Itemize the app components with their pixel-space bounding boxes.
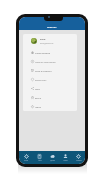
button[interactable]: Terms & Conditions (23, 66, 77, 75)
staticText: Profile (63, 160, 68, 162)
button[interactable]: Quotes (46, 151, 59, 164)
button[interactable]: Home (19, 151, 33, 164)
staticText: Kunal (40, 38, 46, 41)
button[interactable]: Privacy Policy (23, 75, 77, 84)
button[interactable]: About SET TOOLS BUILD (23, 57, 77, 66)
staticText: Terms & Conditions (35, 70, 52, 72)
staticText: Rate us (35, 97, 42, 99)
button[interactable]: Logout (23, 102, 77, 111)
staticText: Settings (47, 25, 57, 28)
staticText: About SET TOOLS BUILD (35, 61, 56, 63)
button[interactable]: Change Password (23, 48, 77, 57)
button[interactable]: Settings (72, 151, 85, 164)
staticText: kunal@settools.in (40, 42, 54, 44)
staticText: Privacy Policy (35, 79, 47, 81)
staticText: Home (24, 160, 28, 162)
staticText: Share (35, 88, 40, 90)
staticText: Settings (76, 160, 82, 162)
button[interactable]: Kunal (23, 34, 77, 48)
button[interactable]: Tools (33, 151, 46, 164)
staticText: Logout (35, 106, 41, 108)
button[interactable]: Profile (59, 151, 72, 164)
staticText: Change Password (35, 52, 51, 54)
button[interactable]: Rate us (23, 93, 77, 102)
staticText: Tools (38, 160, 42, 162)
staticText: Quotes (50, 160, 55, 162)
button[interactable]: Share (23, 84, 77, 93)
